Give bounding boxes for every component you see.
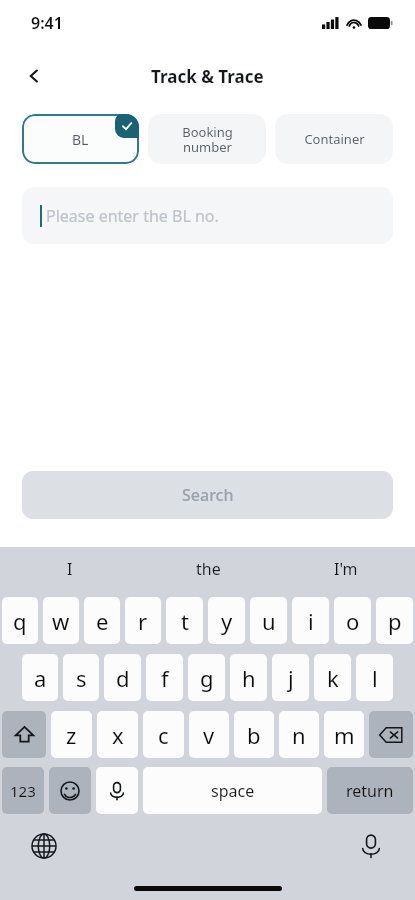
button[interactable]: space (143, 767, 322, 814)
staticText: z (66, 720, 77, 750)
staticText: i (308, 606, 314, 636)
button[interactable]: BL (22, 114, 139, 164)
button[interactable]: Change keyboard (26, 828, 62, 864)
button[interactable]: c (143, 711, 184, 758)
button[interactable]: q (2, 597, 38, 644)
button[interactable]: f (146, 654, 183, 701)
staticText: f (161, 663, 169, 693)
button[interactable]: Dictation (353, 828, 389, 864)
staticText: h (242, 663, 256, 693)
button[interactable]: w (43, 597, 79, 644)
staticText: Please enter the BL no. (46, 205, 219, 227)
button[interactable]: b (234, 711, 274, 758)
staticText: n (292, 720, 306, 750)
staticText: space (211, 780, 255, 802)
staticText: I'm (334, 558, 358, 580)
button[interactable]: return (327, 767, 413, 814)
button[interactable]: e (84, 597, 120, 644)
staticText: y (221, 606, 233, 636)
staticText: u (262, 606, 276, 636)
staticText: the (196, 558, 221, 580)
staticText: t (181, 606, 189, 636)
staticText: Search (182, 484, 234, 506)
button[interactable]: h (230, 654, 267, 701)
staticText: return (346, 780, 394, 802)
staticText: 123 (10, 781, 36, 801)
button[interactable]: Dictation (96, 767, 138, 814)
button[interactable]: 123 (2, 767, 44, 814)
button[interactable]: t (166, 597, 203, 644)
button[interactable]: Backspace (369, 711, 413, 758)
staticText: d (116, 663, 130, 693)
staticText: Booking number (182, 123, 233, 156)
button[interactable]: z (51, 711, 92, 758)
staticText: r (138, 606, 148, 636)
button[interactable]: I'm (277, 547, 415, 591)
button[interactable]: y (208, 597, 245, 644)
staticText: k (327, 663, 339, 693)
button[interactable]: k (314, 654, 351, 701)
button[interactable]: the (139, 547, 277, 591)
staticText: j (288, 663, 294, 693)
button[interactable]: m (324, 711, 364, 758)
button[interactable]: p (376, 597, 413, 644)
button[interactable]: d (104, 654, 141, 701)
button[interactable]: Booking number (148, 114, 266, 164)
button[interactable]: u (250, 597, 287, 644)
button[interactable]: Please enter the BL no. (22, 187, 393, 244)
button[interactable]: l (356, 654, 393, 701)
button[interactable]: i (292, 597, 329, 644)
staticText: BL (72, 130, 89, 149)
button[interactable]: Container (275, 114, 393, 164)
button[interactable]: Search (22, 471, 393, 519)
staticText: I (67, 558, 73, 580)
button[interactable]: s (63, 654, 99, 701)
staticText: a (34, 663, 47, 693)
staticText: q (13, 606, 27, 636)
staticText: p (388, 606, 402, 636)
staticText: m (334, 720, 355, 750)
staticText: Track & Trace (151, 65, 264, 88)
staticText: Container (304, 130, 365, 148)
button[interactable]: I (0, 547, 139, 591)
staticText: e (96, 606, 109, 636)
staticText: b (247, 720, 261, 750)
button[interactable]: g (188, 654, 225, 701)
button[interactable]: j (272, 654, 309, 701)
button[interactable]: x (97, 711, 138, 758)
staticText: s (76, 663, 87, 693)
staticText: l (372, 663, 378, 693)
button[interactable]: Emoji (49, 767, 91, 814)
button[interactable]: Shift (2, 711, 46, 758)
button[interactable]: v (189, 711, 229, 758)
staticText: w (52, 606, 70, 636)
button[interactable]: n (279, 711, 319, 758)
button[interactable]: r (125, 597, 161, 644)
staticText: x (112, 720, 124, 750)
button[interactable]: o (334, 597, 371, 644)
staticText: 9:41 (31, 12, 63, 34)
staticText: c (158, 720, 169, 750)
staticText: o (346, 606, 360, 636)
staticText: v (203, 720, 215, 750)
button[interactable]: a (22, 654, 58, 701)
button[interactable]: Back (12, 54, 56, 98)
staticText: g (200, 663, 214, 693)
